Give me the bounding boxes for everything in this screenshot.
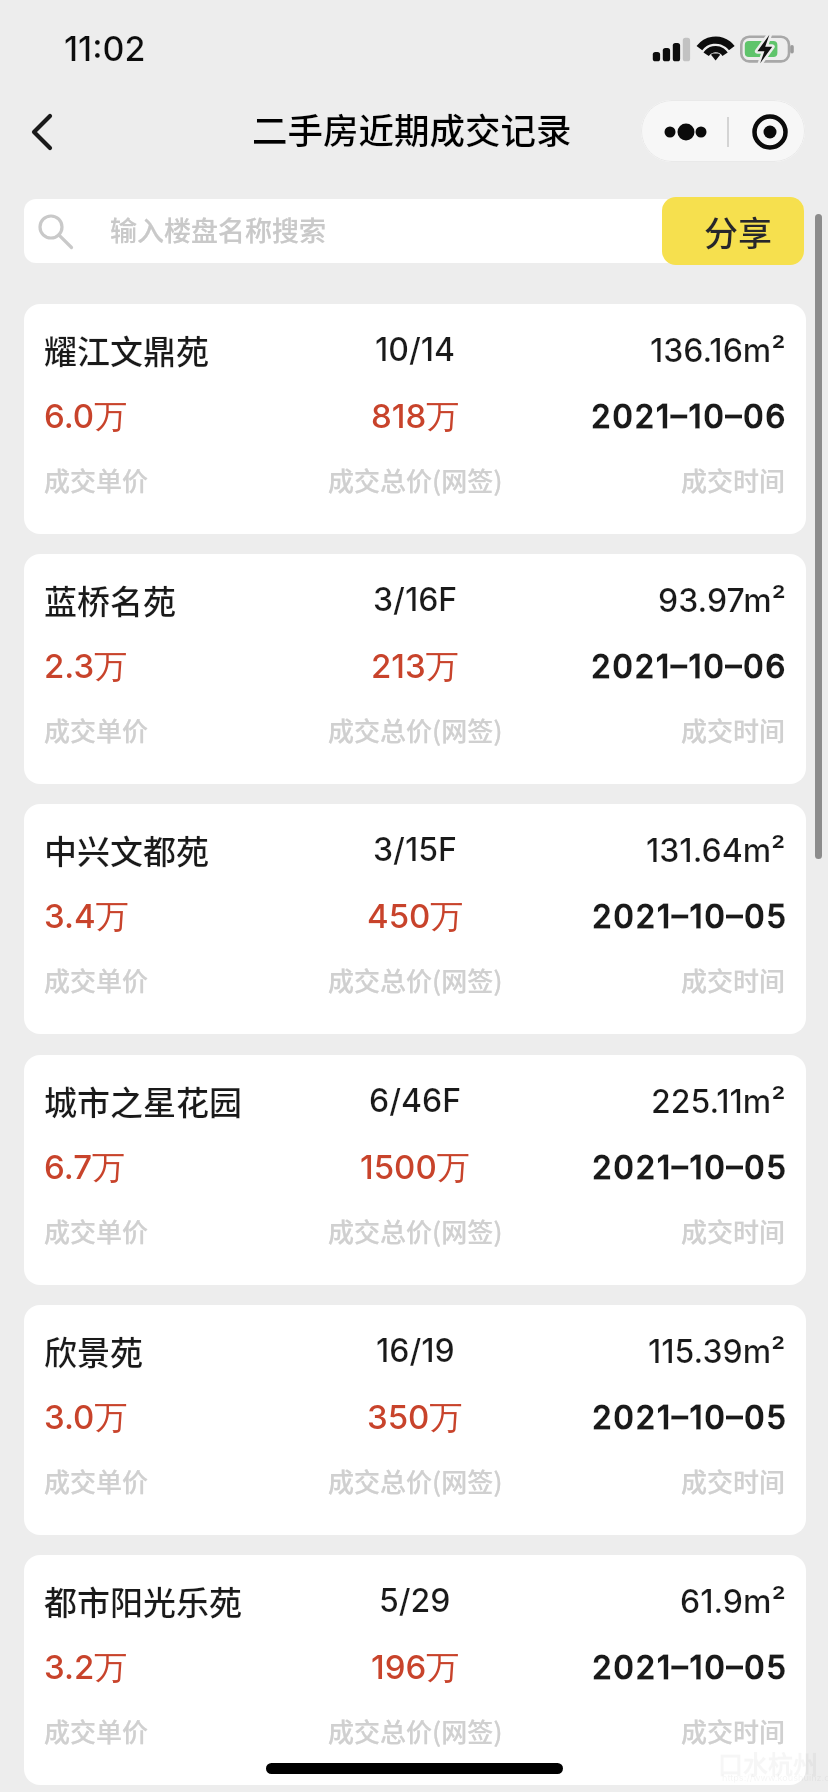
staticText: 成交时间 bbox=[681, 1462, 786, 1500]
staticText: 225.11m² bbox=[651, 1082, 786, 1121]
button[interactable]: 城市之星花园 bbox=[24, 1055, 806, 1285]
staticText: 成交单价 bbox=[44, 461, 149, 499]
staticText: 成交总价(网签) bbox=[328, 1712, 503, 1750]
staticText: 6.0万 bbox=[44, 396, 128, 438]
staticText: 10/14 bbox=[375, 330, 456, 369]
staticText: 成交时间 bbox=[681, 711, 786, 749]
staticText: 蓝桥名苑 bbox=[44, 576, 176, 624]
staticText: 成交单价 bbox=[44, 1462, 149, 1500]
button[interactable]: 都市阳光乐苑 bbox=[24, 1555, 806, 1785]
staticText: 成交时间 bbox=[681, 461, 786, 499]
button[interactable]: 耀江文鼎苑 bbox=[24, 304, 806, 534]
staticText: 3.0万 bbox=[44, 1397, 128, 1439]
button[interactable]: More options bbox=[641, 100, 728, 162]
staticText: 11:02 bbox=[64, 28, 146, 68]
staticText: 都市阳光乐苑 bbox=[44, 1577, 242, 1625]
staticText: 二手房近期成交记录 bbox=[252, 103, 572, 154]
staticText: 成交总价(网签) bbox=[328, 461, 503, 499]
staticText: 196万 bbox=[371, 1647, 460, 1689]
staticText: 3/16F bbox=[373, 580, 458, 619]
staticText: 2021–10–05 bbox=[592, 1648, 788, 1687]
staticText: 输入楼盘名称搜索 bbox=[110, 210, 326, 249]
staticText: 2021–10–05 bbox=[592, 897, 788, 936]
staticText: 61.9m² bbox=[680, 1582, 786, 1621]
staticText: 口水杭州 bbox=[718, 1745, 819, 1781]
staticText: 136.16m² bbox=[650, 331, 786, 370]
button[interactable]: 蓝桥名苑 bbox=[24, 554, 806, 784]
staticText: 131.64m² bbox=[646, 831, 786, 870]
staticText: 成交单价 bbox=[44, 1712, 149, 1750]
staticText: 城市之星花园 bbox=[44, 1077, 242, 1125]
staticText: 2021–10–06 bbox=[591, 647, 788, 686]
staticText: 成交时间 bbox=[681, 1712, 786, 1750]
staticText: 3.2万 bbox=[44, 1647, 128, 1689]
staticText: 5/29 bbox=[379, 1581, 451, 1620]
staticText: 2021–10–06 bbox=[591, 397, 788, 436]
staticText: 2021–10–05 bbox=[592, 1398, 788, 1437]
staticText: 成交时间 bbox=[681, 961, 786, 999]
staticText: https://www.koushuihz.com bbox=[722, 1772, 828, 1783]
staticText: 450万 bbox=[367, 896, 464, 938]
button[interactable]: Close mini program bbox=[736, 100, 805, 162]
staticText: 6.7万 bbox=[44, 1147, 125, 1189]
staticText: 2021–10–05 bbox=[592, 1148, 788, 1187]
staticText: 213万 bbox=[371, 646, 459, 688]
button[interactable]: 欣景苑 bbox=[24, 1305, 806, 1535]
staticText: 成交总价(网签) bbox=[328, 1462, 503, 1500]
staticText: 成交单价 bbox=[44, 961, 149, 999]
staticText: 3.4万 bbox=[44, 896, 129, 938]
staticText: 欣景苑 bbox=[44, 1327, 143, 1375]
staticText: 成交总价(网签) bbox=[328, 961, 503, 999]
staticText: 16/19 bbox=[376, 1331, 455, 1370]
staticText: 成交总价(网签) bbox=[328, 1212, 503, 1250]
staticText: 分享 bbox=[704, 207, 772, 256]
staticText: 3/15F bbox=[373, 830, 457, 869]
staticText: 115.39m² bbox=[648, 1332, 786, 1371]
staticText: 成交单价 bbox=[44, 1212, 149, 1250]
staticText: 818万 bbox=[371, 396, 460, 438]
button[interactable] bbox=[24, 199, 804, 263]
staticText: 耀江文鼎苑 bbox=[44, 326, 209, 374]
button[interactable]: Back bbox=[10, 97, 80, 167]
staticText: 成交时间 bbox=[681, 1212, 786, 1250]
staticText: 成交总价(网签) bbox=[328, 711, 503, 749]
staticText: 中兴文都苑 bbox=[44, 826, 209, 874]
staticText: 2.3万 bbox=[44, 646, 128, 688]
staticText: 350万 bbox=[367, 1397, 463, 1439]
staticText: 1500万 bbox=[360, 1147, 470, 1189]
button[interactable]: 分享 bbox=[662, 197, 804, 265]
staticText: 6/46F bbox=[369, 1081, 461, 1120]
staticText: 成交单价 bbox=[44, 711, 149, 749]
button[interactable]: 中兴文都苑 bbox=[24, 804, 806, 1034]
staticText: 93.97m² bbox=[658, 581, 786, 620]
